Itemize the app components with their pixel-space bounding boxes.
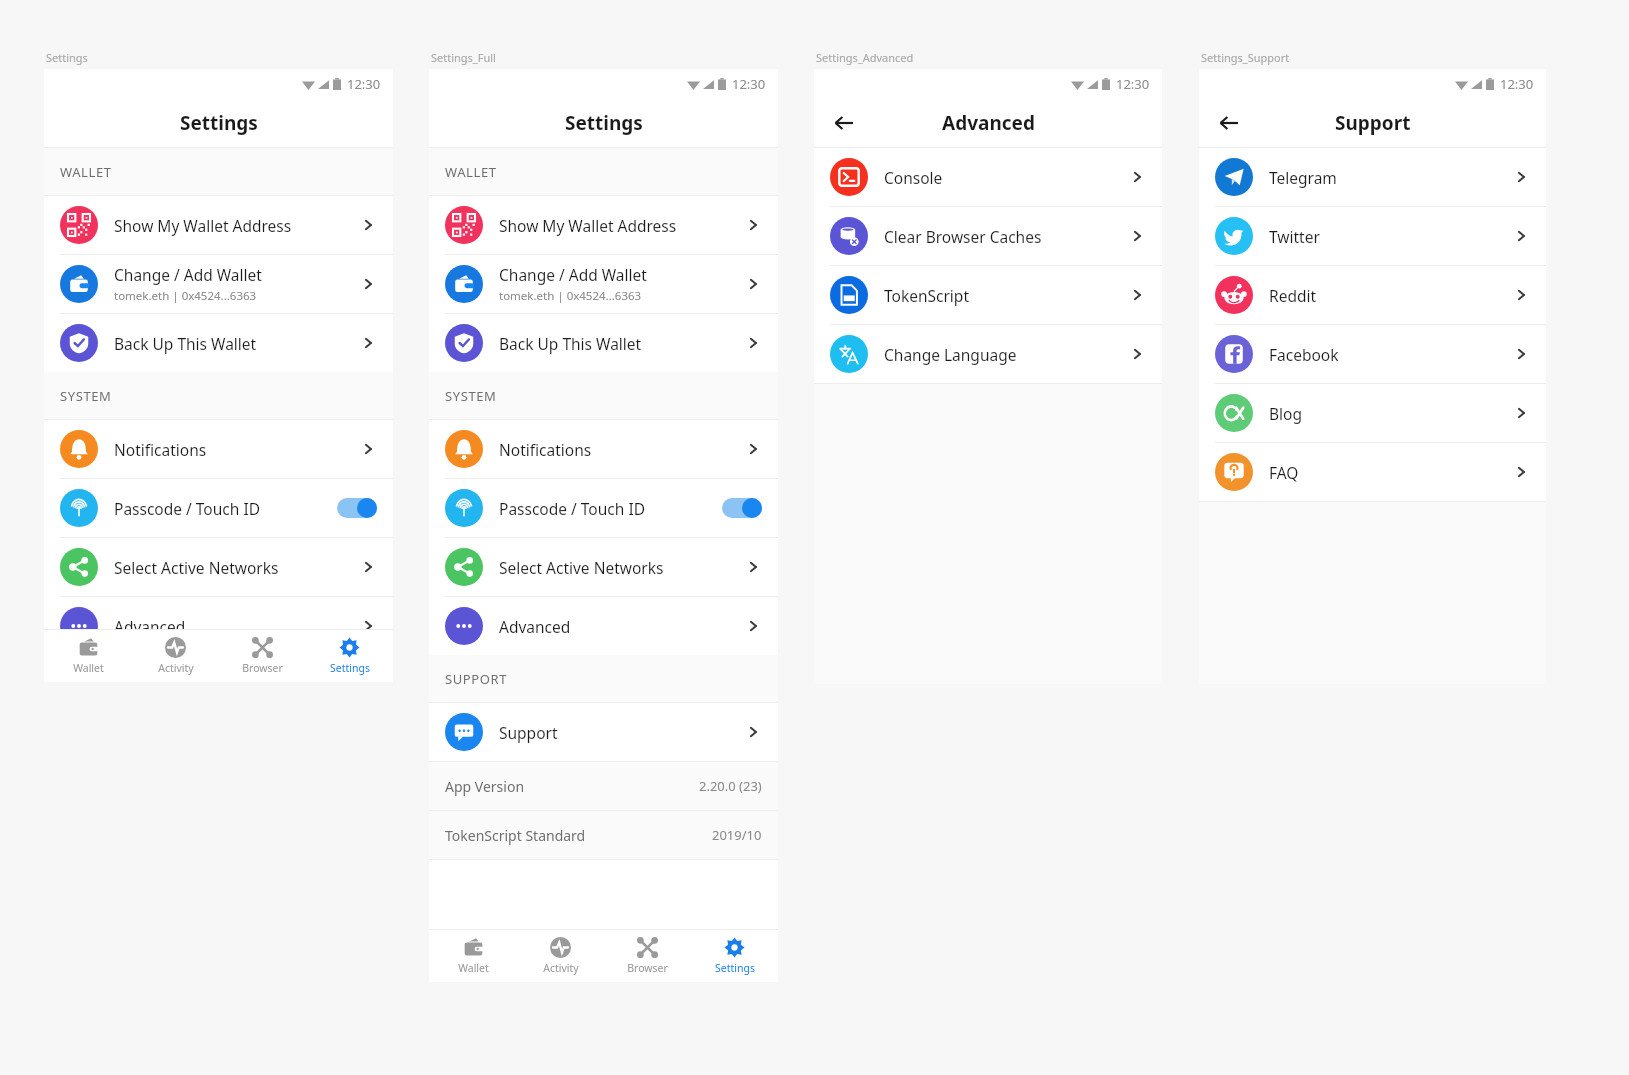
button[interactable]: Facebook xyxy=(1199,325,1546,383)
button[interactable]: Show My Wallet Address xyxy=(429,196,778,254)
staticText: Reddit xyxy=(1269,285,1317,306)
staticText: Settings_Advanced xyxy=(816,50,914,65)
button[interactable]: Telegram xyxy=(1199,148,1546,206)
staticText: Settings xyxy=(46,50,88,65)
staticText: tomek.eth | 0x4524...6363 xyxy=(499,288,642,304)
button[interactable]: Settings xyxy=(691,930,778,982)
button[interactable]: Notifications xyxy=(44,420,393,478)
staticText: Clear Browser Caches xyxy=(884,226,1042,247)
staticText: SYSTEM xyxy=(60,387,112,405)
button[interactable]: Passcode / Touch ID xyxy=(44,479,393,537)
button[interactable]: Activity xyxy=(132,630,219,682)
staticText: Console xyxy=(884,167,943,188)
button[interactable]: Wallet xyxy=(429,930,517,982)
staticText: Change / Add Wallet xyxy=(114,264,262,285)
button[interactable]: Browser xyxy=(219,630,306,682)
button[interactable]: Reddit xyxy=(1199,266,1546,324)
staticText: Back Up This Wallet xyxy=(499,333,642,354)
staticText: Notifications xyxy=(114,439,207,460)
button[interactable]: Support xyxy=(429,703,778,761)
staticText: Support xyxy=(1335,110,1411,136)
button[interactable]: TokenScript xyxy=(814,266,1162,324)
staticText: Advanced xyxy=(499,616,571,637)
staticText: Settings xyxy=(330,661,370,675)
button[interactable]: FAQ xyxy=(1199,443,1546,501)
button[interactable]: Blog xyxy=(1199,384,1546,442)
staticText: Passcode / Touch ID xyxy=(114,498,260,519)
button[interactable]: Clear Browser Caches xyxy=(814,207,1162,265)
staticText: Select Active Networks xyxy=(114,557,279,578)
staticText: Show My Wallet Address xyxy=(499,215,677,236)
staticText: Activity xyxy=(543,961,579,975)
button[interactable]: Select Active Networks xyxy=(429,538,778,596)
staticText: Advanced xyxy=(114,616,186,637)
button[interactable]: Wallet xyxy=(44,630,132,682)
staticText: Passcode / Touch ID xyxy=(499,498,645,519)
button[interactable]: Back Up This Wallet xyxy=(429,314,778,372)
staticText: Show My Wallet Address xyxy=(114,215,292,236)
staticText: Support xyxy=(499,722,558,743)
staticText: Settings_Support xyxy=(1201,50,1290,65)
staticText: Change / Add Wallet xyxy=(499,264,647,285)
staticText: Settings_Full xyxy=(431,50,496,65)
button[interactable]: Notifications xyxy=(429,420,778,478)
button[interactable]: Select Active Networks xyxy=(44,538,393,596)
staticText: 2019/10 xyxy=(712,826,762,844)
staticText: Twitter xyxy=(1269,226,1320,247)
staticText: Back Up This Wallet xyxy=(114,333,257,354)
button[interactable]: Activity xyxy=(517,930,604,982)
button[interactable]: Browser xyxy=(604,930,691,982)
staticText: Change Language xyxy=(884,344,1017,365)
button[interactable]: Advanced xyxy=(429,597,778,655)
button[interactable]: Passcode / Touch ID xyxy=(429,479,778,537)
staticText: Settings xyxy=(715,961,755,975)
button[interactable]: Advanced xyxy=(44,597,393,655)
button[interactable]: Change / Add Wallet xyxy=(44,255,393,313)
staticText: TokenScript xyxy=(884,285,969,306)
button[interactable]: Back xyxy=(826,105,862,141)
button[interactable]: Change / Add Wallet xyxy=(429,255,778,313)
staticText: FAQ xyxy=(1269,462,1299,483)
button[interactable]: Back Up This Wallet xyxy=(44,314,393,372)
staticText: 2.20.0 (23) xyxy=(699,777,762,795)
button[interactable]: Console xyxy=(814,148,1162,206)
staticText: Browser xyxy=(242,661,283,675)
staticText: Telegram xyxy=(1269,167,1337,188)
staticText: Advanced xyxy=(942,110,1035,136)
staticText: WALLET xyxy=(60,163,112,181)
staticText: Wallet xyxy=(73,661,104,675)
staticText: Browser xyxy=(627,961,668,975)
staticText: 12:30 xyxy=(1500,75,1534,93)
staticText: Facebook xyxy=(1269,344,1339,365)
staticText: Select Active Networks xyxy=(499,557,664,578)
button[interactable]: Settings xyxy=(306,630,393,682)
staticText: Activity xyxy=(158,661,194,675)
staticText: Notifications xyxy=(499,439,592,460)
staticText: Settings xyxy=(565,110,643,136)
staticText: Settings xyxy=(180,110,258,136)
staticText: 12:30 xyxy=(732,75,766,93)
button[interactable]: Change Language xyxy=(814,325,1162,383)
staticText: TokenScript Standard xyxy=(445,826,586,845)
staticText: SUPPORT xyxy=(445,670,508,688)
staticText: Wallet xyxy=(458,961,489,975)
staticText: App Version xyxy=(445,777,525,796)
staticText: SYSTEM xyxy=(445,387,497,405)
staticText: tomek.eth | 0x4524...6363 xyxy=(114,288,257,304)
button[interactable]: Show My Wallet Address xyxy=(44,196,393,254)
staticText: 12:30 xyxy=(347,75,381,93)
button[interactable]: Back xyxy=(1211,105,1247,141)
staticText: WALLET xyxy=(445,163,497,181)
staticText: Blog xyxy=(1269,403,1302,424)
staticText: 12:30 xyxy=(1116,75,1150,93)
button[interactable]: Twitter xyxy=(1199,207,1546,265)
